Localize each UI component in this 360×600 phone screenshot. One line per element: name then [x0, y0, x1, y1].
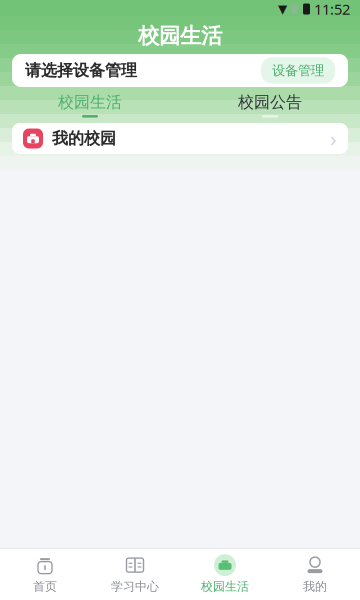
staticText: 校园生活	[58, 92, 122, 112]
staticText: 设备管理	[272, 62, 324, 79]
button[interactable]: 请选择设备管理	[12, 54, 348, 87]
staticText: 请选择设备管理	[25, 61, 137, 80]
staticText: 首页	[33, 579, 57, 594]
button[interactable]: 学习中心	[90, 549, 180, 600]
staticText: 我的校园	[52, 129, 116, 148]
staticText: 校园生活	[201, 579, 249, 594]
button[interactable]: 校园公告	[180, 87, 360, 123]
staticText: 学习中心	[111, 579, 159, 594]
button[interactable]: 校园生活	[0, 87, 180, 123]
button[interactable]: 首页	[0, 549, 90, 600]
button[interactable]: 校园生活	[180, 549, 270, 600]
staticText: 我的	[303, 579, 327, 594]
staticText: ▼	[278, 2, 287, 16]
button[interactable]: 我的	[270, 549, 360, 600]
staticText: 11:52	[314, 0, 350, 19]
staticText: 校园生活	[138, 23, 222, 49]
button[interactable]: 我的校园	[12, 123, 348, 154]
staticText: 校园公告	[238, 92, 302, 112]
staticText: ›	[330, 124, 337, 153]
